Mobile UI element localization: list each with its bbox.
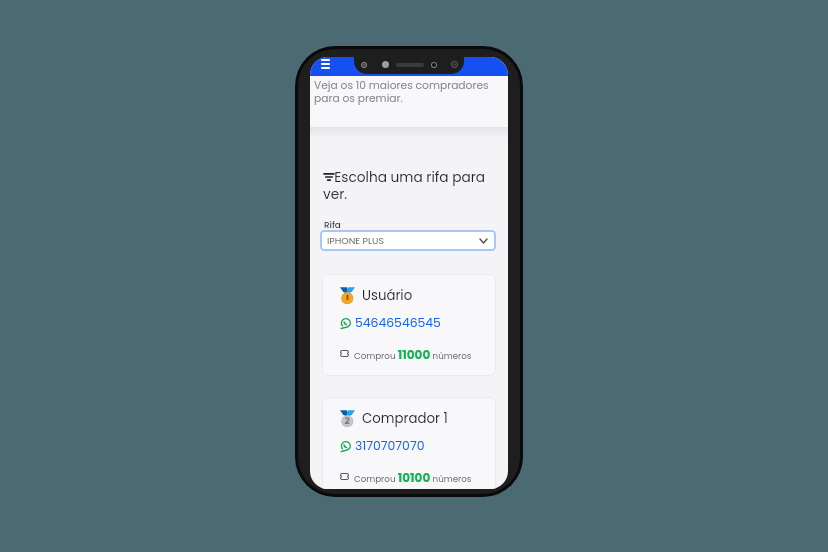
staticText: Escolha uma rifa para ver.: [323, 168, 495, 203]
staticText: Comprou 11000 números: [354, 346, 472, 363]
button[interactable]: Comprador 1: [322, 397, 496, 489]
staticText: Comprou 10100 números: [354, 469, 472, 486]
staticText: Veja os 10 maiores compradores para os p…: [314, 78, 496, 106]
button[interactable]: Menu: [321, 59, 330, 69]
button[interactable]: IPHONE PLUS: [320, 230, 496, 251]
staticText: 3170707070: [355, 437, 425, 454]
staticText: Rifa: [324, 219, 341, 231]
staticText: 54646546545: [355, 314, 441, 331]
staticText: Usuário: [362, 286, 413, 305]
button[interactable]: Usuário: [322, 274, 496, 376]
staticText: Comprador 1: [362, 409, 448, 428]
staticText: IPHONE PLUS: [327, 234, 384, 247]
